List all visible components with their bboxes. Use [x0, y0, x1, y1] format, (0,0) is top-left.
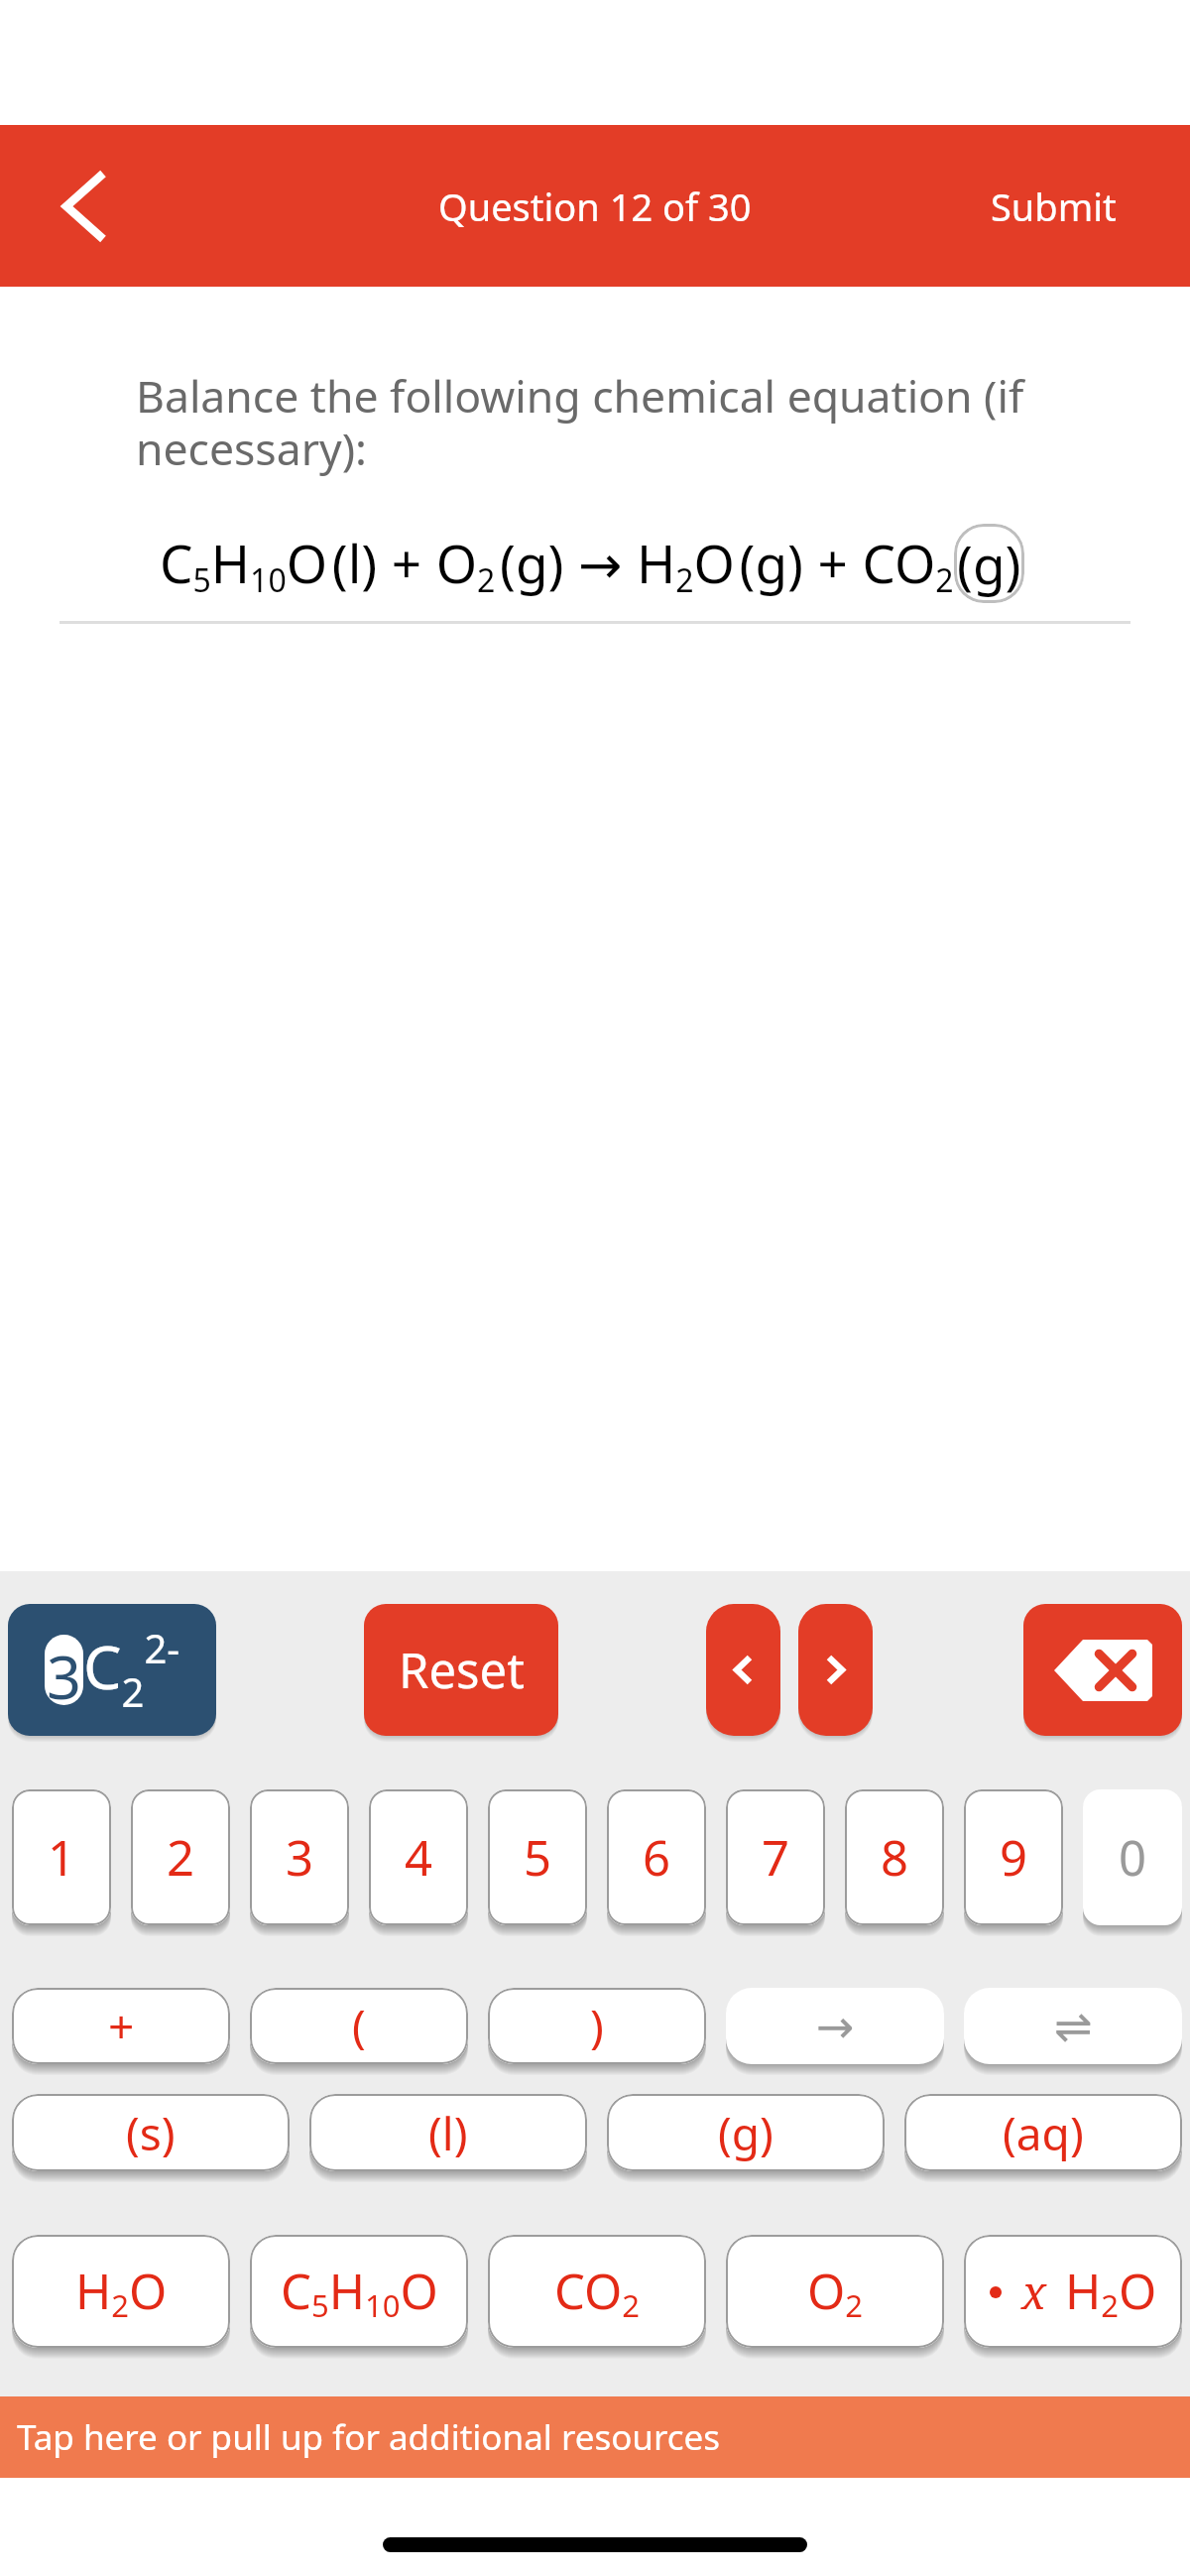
button[interactable]: Delete: [1023, 1604, 1182, 1736]
staticText: →: [816, 2000, 855, 2053]
staticText: 0: [1119, 1824, 1147, 1891]
button[interactable]: Previous: [706, 1604, 780, 1736]
button[interactable]: C5H10O (l) + O2 (g) → H2O (g) + CO2: [0, 524, 1190, 603]
button[interactable]: Submit: [951, 125, 1190, 287]
button[interactable]: 6: [607, 1789, 706, 1925]
button[interactable]: H2O: [12, 2235, 230, 2348]
button[interactable]: Reset: [364, 1604, 558, 1736]
staticText: 3: [47, 1635, 81, 1705]
staticText: H2O: [75, 2258, 168, 2326]
button[interactable]: (g): [607, 2094, 885, 2171]
button[interactable]: 0: [1083, 1789, 1182, 1925]
staticText: C5H10O (l) + O2 (g) → H2O (g) + CO2: [160, 527, 954, 601]
button[interactable]: (: [250, 1988, 468, 2064]
button[interactable]: 1: [12, 1789, 111, 1925]
button[interactable]: O2: [726, 2235, 944, 2348]
staticText: 1: [48, 1824, 76, 1891]
button[interactable]: x: [964, 2235, 1182, 2348]
button[interactable]: 7: [726, 1789, 825, 1925]
button[interactable]: (g): [954, 524, 1024, 603]
staticText: (: [352, 1995, 366, 2057]
staticText: Reset: [399, 1637, 525, 1703]
button[interactable]: 3: [8, 1604, 216, 1736]
button[interactable]: (s): [12, 2094, 290, 2171]
button[interactable]: (aq): [904, 2094, 1182, 2171]
staticText: 8: [881, 1824, 909, 1891]
staticText: CO2: [554, 2258, 640, 2326]
button[interactable]: Back: [0, 125, 169, 287]
button[interactable]: Next: [798, 1604, 873, 1736]
staticText: C22-: [83, 1621, 180, 1719]
staticText: H2O: [1065, 2258, 1157, 2326]
staticText: 7: [762, 1824, 790, 1891]
button[interactable]: +: [12, 1988, 230, 2064]
button[interactable]: CO2: [488, 2235, 706, 2348]
staticText: Balance the following chemical equation …: [136, 365, 1129, 478]
staticText: 2: [167, 1824, 195, 1891]
staticText: ⇌: [1054, 2000, 1093, 2053]
staticText: ): [590, 1995, 604, 2057]
staticText: x: [1021, 2261, 1047, 2323]
staticText: 6: [643, 1824, 671, 1891]
staticText: 5: [524, 1824, 552, 1891]
button[interactable]: Tap here or pull up for additional resou…: [0, 2396, 1190, 2478]
staticText: 3: [286, 1824, 314, 1891]
staticText: (s): [126, 2102, 176, 2164]
staticText: (g): [718, 2102, 773, 2164]
staticText: (l): [428, 2102, 468, 2164]
staticText: C5H10O: [281, 2258, 438, 2326]
button[interactable]: ⇌: [964, 1988, 1182, 2064]
staticText: 9: [1000, 1824, 1028, 1891]
staticText: Tap here or pull up for additional resou…: [17, 2413, 721, 2461]
button[interactable]: 2: [131, 1789, 230, 1925]
staticText: O2: [807, 2258, 864, 2326]
staticText: 4: [405, 1824, 433, 1891]
button[interactable]: C5H10O: [250, 2235, 468, 2348]
button[interactable]: (l): [309, 2094, 587, 2171]
button[interactable]: 5: [488, 1789, 587, 1925]
button[interactable]: 4: [369, 1789, 468, 1925]
staticText: Question 12 of 30: [438, 181, 752, 232]
button[interactable]: 9: [964, 1789, 1063, 1925]
button[interactable]: →: [726, 1988, 944, 2064]
button[interactable]: 3: [250, 1789, 349, 1925]
staticText: Submit: [991, 181, 1117, 232]
staticText: (aq): [1003, 2102, 1084, 2164]
button[interactable]: 8: [845, 1789, 944, 1925]
button[interactable]: ): [488, 1988, 706, 2064]
staticText: +: [108, 1995, 135, 2057]
staticText: (g): [957, 528, 1021, 599]
